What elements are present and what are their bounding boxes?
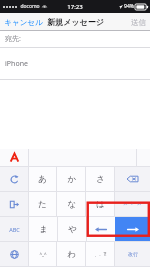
staticText: 送信 bbox=[131, 18, 146, 27]
staticText: た bbox=[38, 199, 47, 210]
staticText: スペース bbox=[123, 201, 142, 207]
staticText: ま bbox=[39, 224, 48, 235]
staticText: iPhone bbox=[5, 59, 28, 69]
other: Undo bbox=[10, 175, 19, 184]
button[interactable]: Delete bbox=[115, 167, 150, 191]
button[interactable]: や bbox=[58, 217, 86, 241]
button[interactable]: か bbox=[57, 167, 85, 191]
staticText: ^_^ bbox=[39, 251, 47, 257]
button[interactable]: Move cursor right bbox=[115, 217, 150, 241]
button[interactable]: 送信 bbox=[127, 13, 150, 31]
staticText: 宛先: bbox=[5, 34, 21, 44]
staticText: は bbox=[96, 199, 105, 210]
button[interactable]: スペース bbox=[115, 192, 150, 216]
other: Next field bbox=[10, 200, 19, 209]
staticText: 17:23 bbox=[67, 3, 83, 11]
other: Change keyboard bbox=[10, 250, 19, 259]
staticText: か bbox=[67, 174, 76, 185]
staticText: や bbox=[68, 224, 77, 235]
button[interactable]: Change keyboard bbox=[0, 242, 28, 266]
button[interactable]: 、。?! bbox=[86, 242, 114, 266]
button[interactable]: Move cursor left bbox=[87, 217, 115, 241]
staticText: あ bbox=[38, 174, 47, 185]
button[interactable]: あ bbox=[29, 167, 56, 191]
button[interactable]: な bbox=[57, 192, 85, 216]
staticText: わ bbox=[67, 249, 76, 260]
other: Delete bbox=[127, 175, 138, 183]
button[interactable]: さ bbox=[86, 167, 114, 191]
button[interactable]: 改行 bbox=[115, 242, 150, 266]
button[interactable]: Input mode bbox=[0, 149, 28, 166]
button[interactable]: た bbox=[29, 192, 56, 216]
staticText: 、。?! bbox=[94, 251, 107, 257]
button[interactable]: ABC bbox=[0, 217, 28, 241]
staticText: 新規メッセージ bbox=[47, 17, 104, 27]
button[interactable]: Undo bbox=[0, 167, 28, 191]
button[interactable]: ま bbox=[29, 217, 57, 241]
staticText: 改行 bbox=[128, 251, 138, 257]
button[interactable]: は bbox=[86, 192, 114, 216]
button[interactable]: 宛先: bbox=[0, 31, 150, 47]
button[interactable]: Next field bbox=[0, 192, 28, 216]
button[interactable]: わ bbox=[57, 242, 85, 266]
staticText: キャンセル bbox=[4, 18, 43, 27]
button[interactable]: キャンセル bbox=[0, 13, 47, 31]
staticText: docomo bbox=[20, 3, 40, 10]
staticText: ABC bbox=[9, 226, 20, 233]
button[interactable]: ^_^ bbox=[29, 242, 56, 266]
staticText: な bbox=[67, 199, 76, 210]
staticText: さ bbox=[96, 174, 105, 185]
staticText: 94% bbox=[124, 3, 134, 10]
